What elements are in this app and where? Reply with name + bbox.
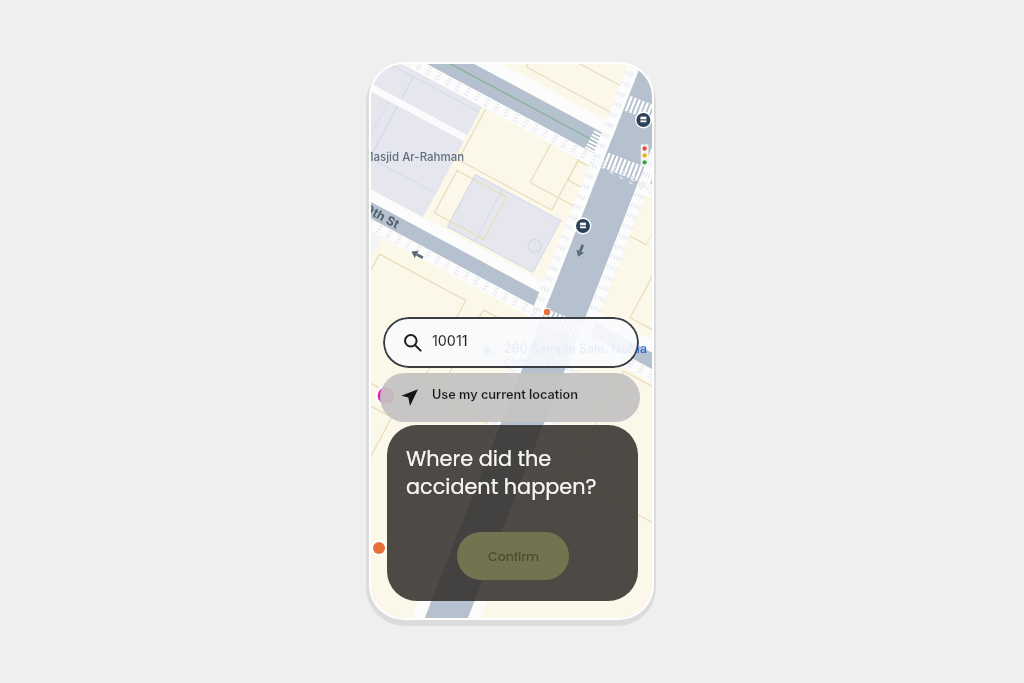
staticText: 9th St [371, 201, 402, 232]
other: Use my current location [401, 389, 418, 406]
staticText: 10011 [432, 332, 468, 349]
button[interactable]: Confirm [457, 532, 569, 580]
staticText: Masjid Ar-Rahman [371, 150, 465, 164]
staticText: Confirm [488, 548, 539, 565]
staticText: Where did the accident happen? [406, 444, 597, 501]
staticText: Clothing shop [504, 356, 570, 368]
staticText: Use my current location [432, 387, 579, 402]
button[interactable]: Use my current location [380, 373, 640, 422]
other: Search [404, 334, 421, 351]
button[interactable]: Search [383, 317, 639, 368]
staticText: 260 Sample Sale. NoMa [504, 341, 647, 356]
